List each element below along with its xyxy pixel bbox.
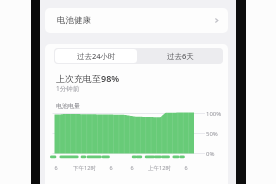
staticText: 6	[184, 164, 188, 171]
staticText: 上午12时	[148, 164, 171, 172]
staticText: 电池电量	[56, 102, 80, 110]
staticText: 过去24小时	[77, 51, 116, 61]
staticText: 100%	[206, 110, 222, 118]
staticText: 6	[109, 164, 113, 171]
staticText: 50%	[206, 130, 218, 138]
button[interactable]: 过去24小时	[55, 49, 137, 63]
button[interactable]: 电池健康	[45, 8, 228, 33]
staticText: 上次充电至98%	[56, 72, 120, 84]
staticText: 6	[54, 164, 58, 171]
staticText: 1分钟前	[56, 84, 80, 93]
staticText: 6	[130, 164, 134, 171]
staticText: 0%	[206, 150, 215, 158]
staticText: 下午12时	[73, 164, 96, 172]
button[interactable]: 过去6天	[138, 48, 223, 64]
staticText: 过去6天	[167, 51, 194, 61]
staticText: 电池健康	[57, 15, 91, 26]
